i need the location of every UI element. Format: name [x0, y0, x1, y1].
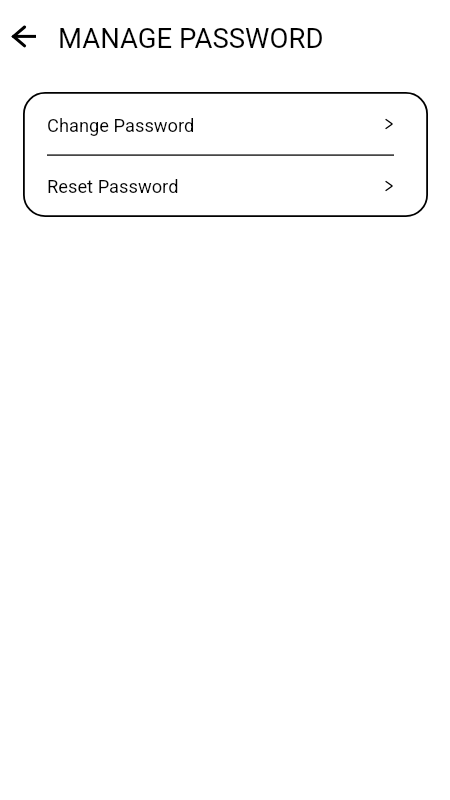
staticText: Reset Password	[47, 176, 179, 197]
staticText: MANAGE PASSWORD	[58, 22, 324, 54]
button[interactable]: Back	[8, 20, 40, 52]
button[interactable]: Reset Password	[23, 156, 428, 217]
button[interactable]: Change Password	[23, 92, 428, 154]
staticText: Change Password	[47, 115, 195, 136]
